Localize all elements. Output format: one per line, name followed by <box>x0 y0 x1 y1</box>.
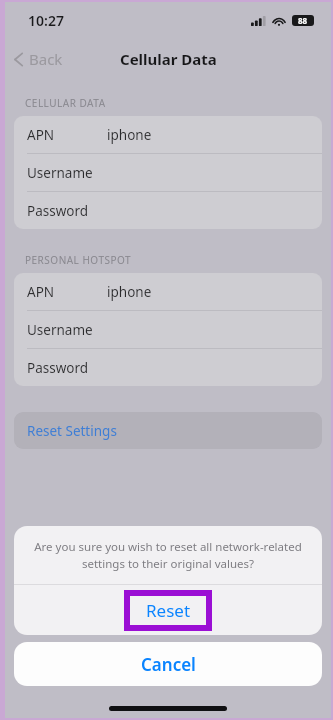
button[interactable]: Password <box>14 192 322 229</box>
staticText: iphone <box>107 283 152 301</box>
button[interactable]: APN <box>14 273 322 310</box>
button[interactable]: Back <box>5 44 73 74</box>
staticText: APN <box>27 126 107 144</box>
staticText: Back <box>29 49 63 69</box>
button[interactable]: Reset Settings <box>14 412 322 449</box>
staticText: Password <box>27 359 107 377</box>
staticText: Cancel <box>141 653 196 676</box>
staticText: Reset <box>146 599 191 622</box>
staticText: Username <box>27 164 107 182</box>
button[interactable]: Username <box>14 311 322 348</box>
staticText: 88 <box>298 15 308 26</box>
staticText: Password <box>27 202 107 220</box>
staticText: CELLULAR DATA <box>25 96 106 110</box>
other: Back <box>13 51 24 68</box>
button[interactable]: Username <box>14 154 322 191</box>
staticText: Are you sure you wish to reset all netwo… <box>31 539 305 571</box>
button[interactable]: Password <box>14 349 322 386</box>
staticText: PERSONAL HOTSPOT <box>25 253 132 267</box>
staticText: Reset Settings <box>27 422 117 440</box>
button[interactable]: Cancel <box>14 642 322 686</box>
staticText: 10:27 <box>28 11 64 30</box>
staticText: Username <box>27 321 107 339</box>
staticText: APN <box>27 283 107 301</box>
staticText: iphone <box>107 126 152 144</box>
button[interactable]: APN <box>14 116 322 153</box>
staticText: Cellular Data <box>120 49 217 69</box>
button[interactable]: Reset <box>14 585 322 635</box>
